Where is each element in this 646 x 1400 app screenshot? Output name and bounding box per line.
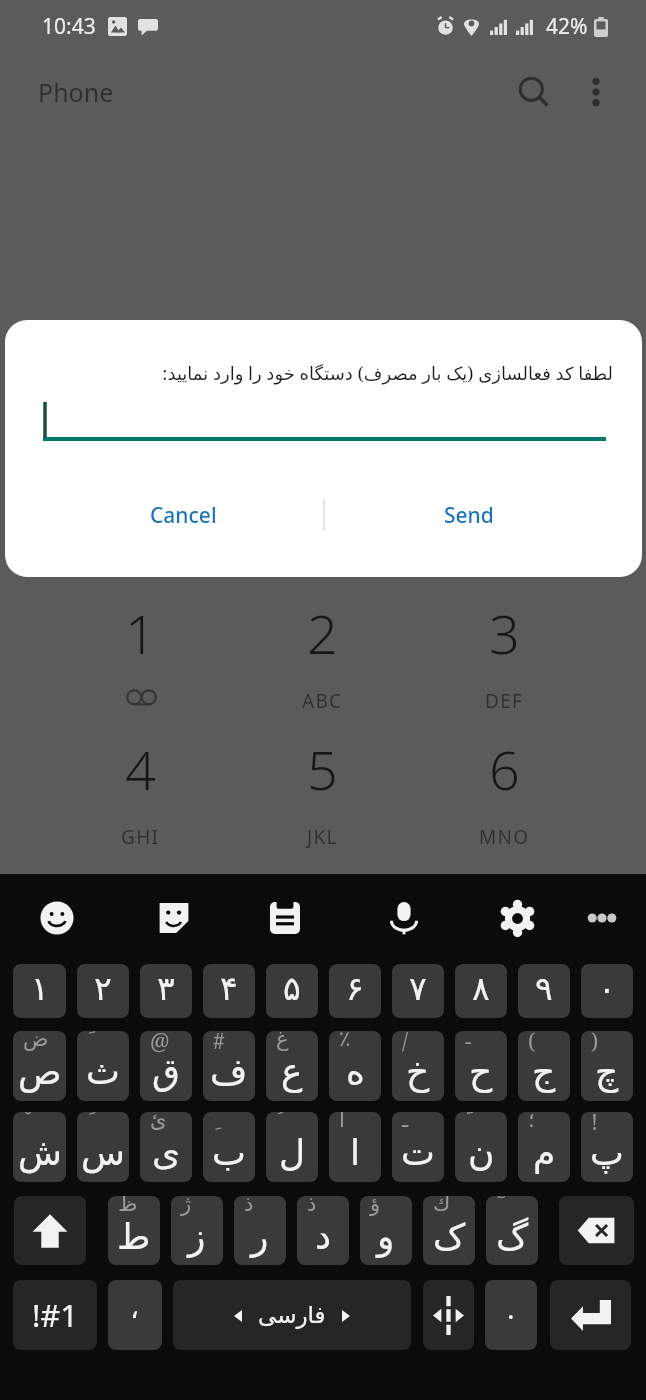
button[interactable]: ۵ (266, 964, 318, 1018)
button[interactable]: آ (329, 1112, 381, 1182)
button[interactable]: ؛ (518, 1112, 570, 1182)
staticText: ا (350, 1132, 361, 1174)
button[interactable]: ، (108, 1280, 162, 1350)
button[interactable]: Cursor control (423, 1280, 474, 1350)
button[interactable]: ( (518, 1031, 570, 1101)
button[interactable]: Send (354, 482, 583, 548)
staticText: ت (401, 1132, 435, 1174)
button[interactable]: @ (140, 1031, 192, 1101)
button[interactable]: ! (581, 1112, 633, 1182)
button[interactable]: ۲ (77, 964, 129, 1018)
staticText: پ (590, 1132, 624, 1174)
button[interactable]: ٓ (486, 1196, 538, 1265)
button[interactable]: Backspace (559, 1196, 634, 1265)
button[interactable]: ذ (297, 1196, 349, 1265)
button[interactable]: ً (77, 1031, 129, 1101)
button[interactable]: ۱ (13, 964, 66, 1018)
button[interactable]: !#1 (13, 1280, 97, 1350)
button[interactable]: # (203, 1031, 255, 1101)
button[interactable]: ظ (108, 1196, 160, 1265)
button[interactable]: فارسی (173, 1280, 411, 1350)
button[interactable]: ۴ (203, 964, 255, 1018)
staticText: 1 (125, 596, 156, 670)
staticText: 4 (125, 732, 156, 806)
button[interactable]: ْ (13, 1112, 66, 1182)
staticText: ٪ (339, 1031, 351, 1051)
staticText: چ (595, 1051, 619, 1093)
button[interactable]: ـ (392, 1112, 444, 1182)
button[interactable]: ۷ (392, 964, 444, 1018)
staticText: 5 (307, 732, 338, 806)
button[interactable]: ٪ (329, 1031, 381, 1101)
staticText: ؤ (370, 1196, 381, 1216)
button[interactable]: غ (266, 1031, 318, 1101)
staticText: ب (212, 1132, 246, 1174)
staticText: ر (251, 1216, 269, 1258)
button[interactable]: ۳ (140, 964, 192, 1018)
staticText: ذ (307, 1196, 317, 1216)
button[interactable]: ِ (203, 1112, 255, 1182)
button[interactable]: َ (77, 1112, 129, 1182)
button[interactable]: ؤ (360, 1196, 412, 1265)
button[interactable]: ) (581, 1031, 633, 1101)
staticText: س (81, 1132, 125, 1174)
button[interactable]: 5 (262, 736, 382, 856)
button[interactable]: ئ (140, 1112, 192, 1182)
staticText: ( (528, 1031, 536, 1056)
button[interactable]: ۶ (329, 964, 381, 1018)
button[interactable]: Clipboard (257, 890, 313, 946)
button[interactable]: 2 (262, 600, 382, 720)
button[interactable]: - (455, 1031, 507, 1101)
button[interactable]: 4 (80, 736, 200, 856)
staticText: ع (281, 1051, 303, 1093)
staticText: فارسی (258, 1302, 326, 1329)
button[interactable]: 3 (444, 600, 564, 720)
staticText: . (507, 1289, 515, 1327)
button[interactable]: Settings (489, 890, 545, 946)
button[interactable]: Emoji (29, 890, 85, 946)
staticText: ۱ (31, 969, 49, 1007)
staticText: MNO (479, 824, 530, 850)
button[interactable]: Voice input (376, 890, 432, 946)
staticText: ث (86, 1051, 120, 1093)
button[interactable]: ذ (234, 1196, 286, 1265)
staticText: ز (188, 1216, 206, 1258)
button[interactable]: ۸ (455, 964, 507, 1018)
staticText: ن (468, 1132, 495, 1174)
button[interactable]: ك (423, 1196, 475, 1265)
button[interactable]: Stickers (146, 890, 202, 946)
staticText: 3 (489, 596, 520, 670)
staticText: ؛ (528, 1112, 535, 1132)
button[interactable]: ۹ (518, 964, 570, 1018)
staticText: ۹ (535, 969, 553, 1007)
button[interactable]: More (574, 890, 630, 946)
button[interactable]: . (485, 1280, 537, 1350)
staticText: ک (433, 1216, 466, 1258)
button[interactable]: Search (506, 64, 562, 120)
staticText: ـ (402, 1112, 409, 1132)
button[interactable]: / (392, 1031, 444, 1101)
staticText: آ (339, 1112, 345, 1132)
button[interactable]: 1 (80, 600, 200, 720)
button[interactable]: 6 (444, 736, 564, 856)
staticText: ذ (244, 1196, 254, 1216)
button[interactable]: Cancel (38, 482, 328, 548)
staticText: ژ (181, 1196, 192, 1216)
staticText: !#1 (32, 1294, 79, 1336)
button[interactable]: ّ (455, 1112, 507, 1182)
staticText: JKL (307, 824, 338, 850)
button[interactable]: Shift (14, 1196, 86, 1265)
staticText: DEF (485, 688, 524, 714)
button[interactable]: ژ (171, 1196, 223, 1265)
button[interactable]: ُ (266, 1112, 318, 1182)
staticText: GHI (121, 824, 160, 850)
staticText: ۲ (94, 969, 112, 1007)
staticText: ص (18, 1051, 62, 1093)
staticText: 2 (307, 596, 338, 670)
button[interactable]: Enter (550, 1280, 631, 1350)
staticText: ۵ (283, 969, 301, 1007)
button[interactable]: ض (13, 1031, 66, 1101)
button[interactable]: ۰ (581, 964, 633, 1018)
button[interactable]: More options (570, 66, 622, 118)
staticText: / (402, 1031, 409, 1056)
